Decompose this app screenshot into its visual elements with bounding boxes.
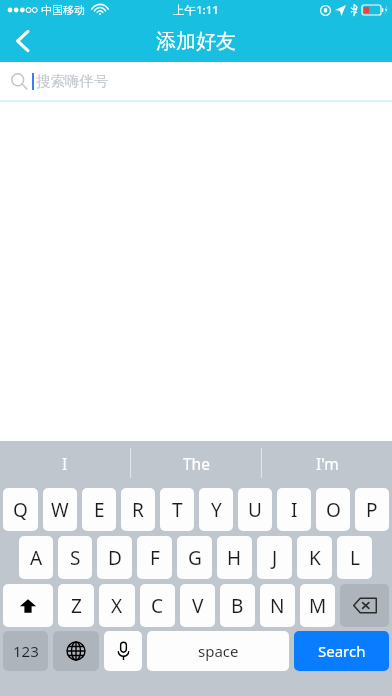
button[interactable]: C <box>140 584 175 627</box>
staticText: O <box>326 497 341 523</box>
button[interactable]: D <box>97 536 132 579</box>
staticText: Q <box>13 497 28 523</box>
button[interactable]: O <box>316 488 350 531</box>
button[interactable]: Change keyboard <box>53 631 99 671</box>
button[interactable]: N <box>260 584 295 627</box>
button[interactable]: G <box>177 536 212 579</box>
button[interactable]: Search <box>294 631 389 671</box>
staticText: W <box>51 497 69 523</box>
staticText: 上午1:11 <box>173 2 219 18</box>
button[interactable]: S <box>58 536 92 579</box>
button[interactable]: P <box>355 488 389 531</box>
staticText: H <box>227 545 242 571</box>
staticText: F <box>150 545 160 571</box>
button[interactable]: I <box>277 488 311 531</box>
staticText: B <box>231 593 244 619</box>
button[interactable]: J <box>257 536 292 579</box>
button[interactable]: K <box>297 536 332 579</box>
button[interactable]: L <box>337 536 372 579</box>
staticText: A <box>30 545 43 571</box>
staticText: N <box>270 593 285 619</box>
staticText: I'm <box>316 453 339 474</box>
staticText: U <box>248 497 262 523</box>
button[interactable]: V <box>180 584 215 627</box>
staticText: T <box>172 497 183 523</box>
staticText: D <box>108 545 122 571</box>
button[interactable]: space <box>147 631 289 671</box>
staticText: M <box>309 593 327 619</box>
staticText: Z <box>71 593 82 619</box>
staticText: V <box>192 593 204 619</box>
button[interactable]: X <box>99 584 135 627</box>
staticText: I <box>291 497 298 523</box>
button[interactable]: The <box>131 441 261 485</box>
staticText: K <box>309 545 321 571</box>
button[interactable]: Q <box>3 488 38 531</box>
button[interactable]: Back <box>0 20 44 62</box>
button[interactable]: A <box>19 536 53 579</box>
button[interactable]: Voice input <box>104 631 142 671</box>
button[interactable]: 123 <box>3 631 48 671</box>
staticText: space <box>198 641 239 661</box>
button[interactable]: Z <box>58 584 94 627</box>
button[interactable]: 搜索嗨伴号 <box>0 62 392 100</box>
staticText: 123 <box>13 641 39 661</box>
staticText: Y <box>211 497 222 523</box>
staticText: P <box>366 497 378 523</box>
button[interactable]: W <box>43 488 77 531</box>
staticText: 添加好友 <box>156 29 236 54</box>
staticText: J <box>272 545 278 571</box>
staticText: G <box>188 545 202 571</box>
staticText: I <box>62 453 68 474</box>
staticText: X <box>111 593 123 619</box>
staticText: L <box>350 545 360 571</box>
button[interactable]: I <box>0 441 130 485</box>
button[interactable]: Y <box>199 488 233 531</box>
button[interactable]: R <box>121 488 155 531</box>
staticText: S <box>70 545 81 571</box>
button[interactable]: E <box>82 488 116 531</box>
staticText: E <box>94 497 105 523</box>
staticText: R <box>132 497 144 523</box>
staticText: C <box>151 593 164 619</box>
button[interactable]: H <box>217 536 252 579</box>
button[interactable]: Shift <box>3 584 53 627</box>
staticText: Search <box>318 641 366 661</box>
staticText: 中国移动 <box>41 3 85 17</box>
button[interactable]: B <box>220 584 255 627</box>
button[interactable]: U <box>238 488 272 531</box>
button[interactable]: F <box>137 536 172 579</box>
button[interactable]: M <box>300 584 335 627</box>
button[interactable]: T <box>160 488 194 531</box>
button[interactable]: I'm <box>262 441 392 485</box>
button[interactable]: Backspace <box>340 584 389 627</box>
staticText: 搜索嗨伴号 <box>36 72 109 90</box>
staticText: The <box>183 453 210 474</box>
